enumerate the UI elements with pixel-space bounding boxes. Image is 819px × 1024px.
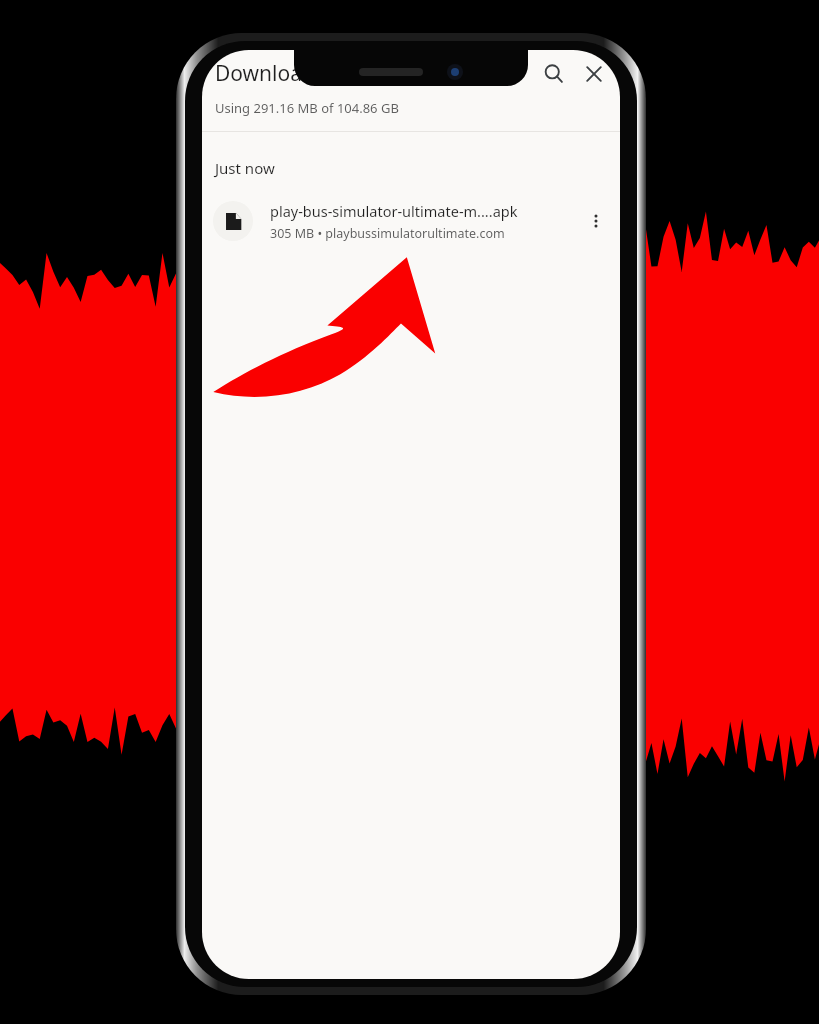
- button[interactable]: More options: [577, 202, 615, 240]
- staticText: Downloads: [215, 59, 325, 88]
- staticText: Just now: [215, 158, 275, 178]
- staticText: Using 291.16 MB of 104.86 GB: [215, 99, 399, 117]
- staticText: 305 MB • playbussimulatorultimate.com: [270, 225, 505, 242]
- staticText: play-bus-simulator-ultimate-m....apk: [270, 201, 518, 221]
- button[interactable]: Search: [534, 54, 574, 94]
- button[interactable]: Close: [574, 54, 614, 94]
- button[interactable]: play-bus-simulator-ultimate-m....apk: [202, 190, 620, 252]
